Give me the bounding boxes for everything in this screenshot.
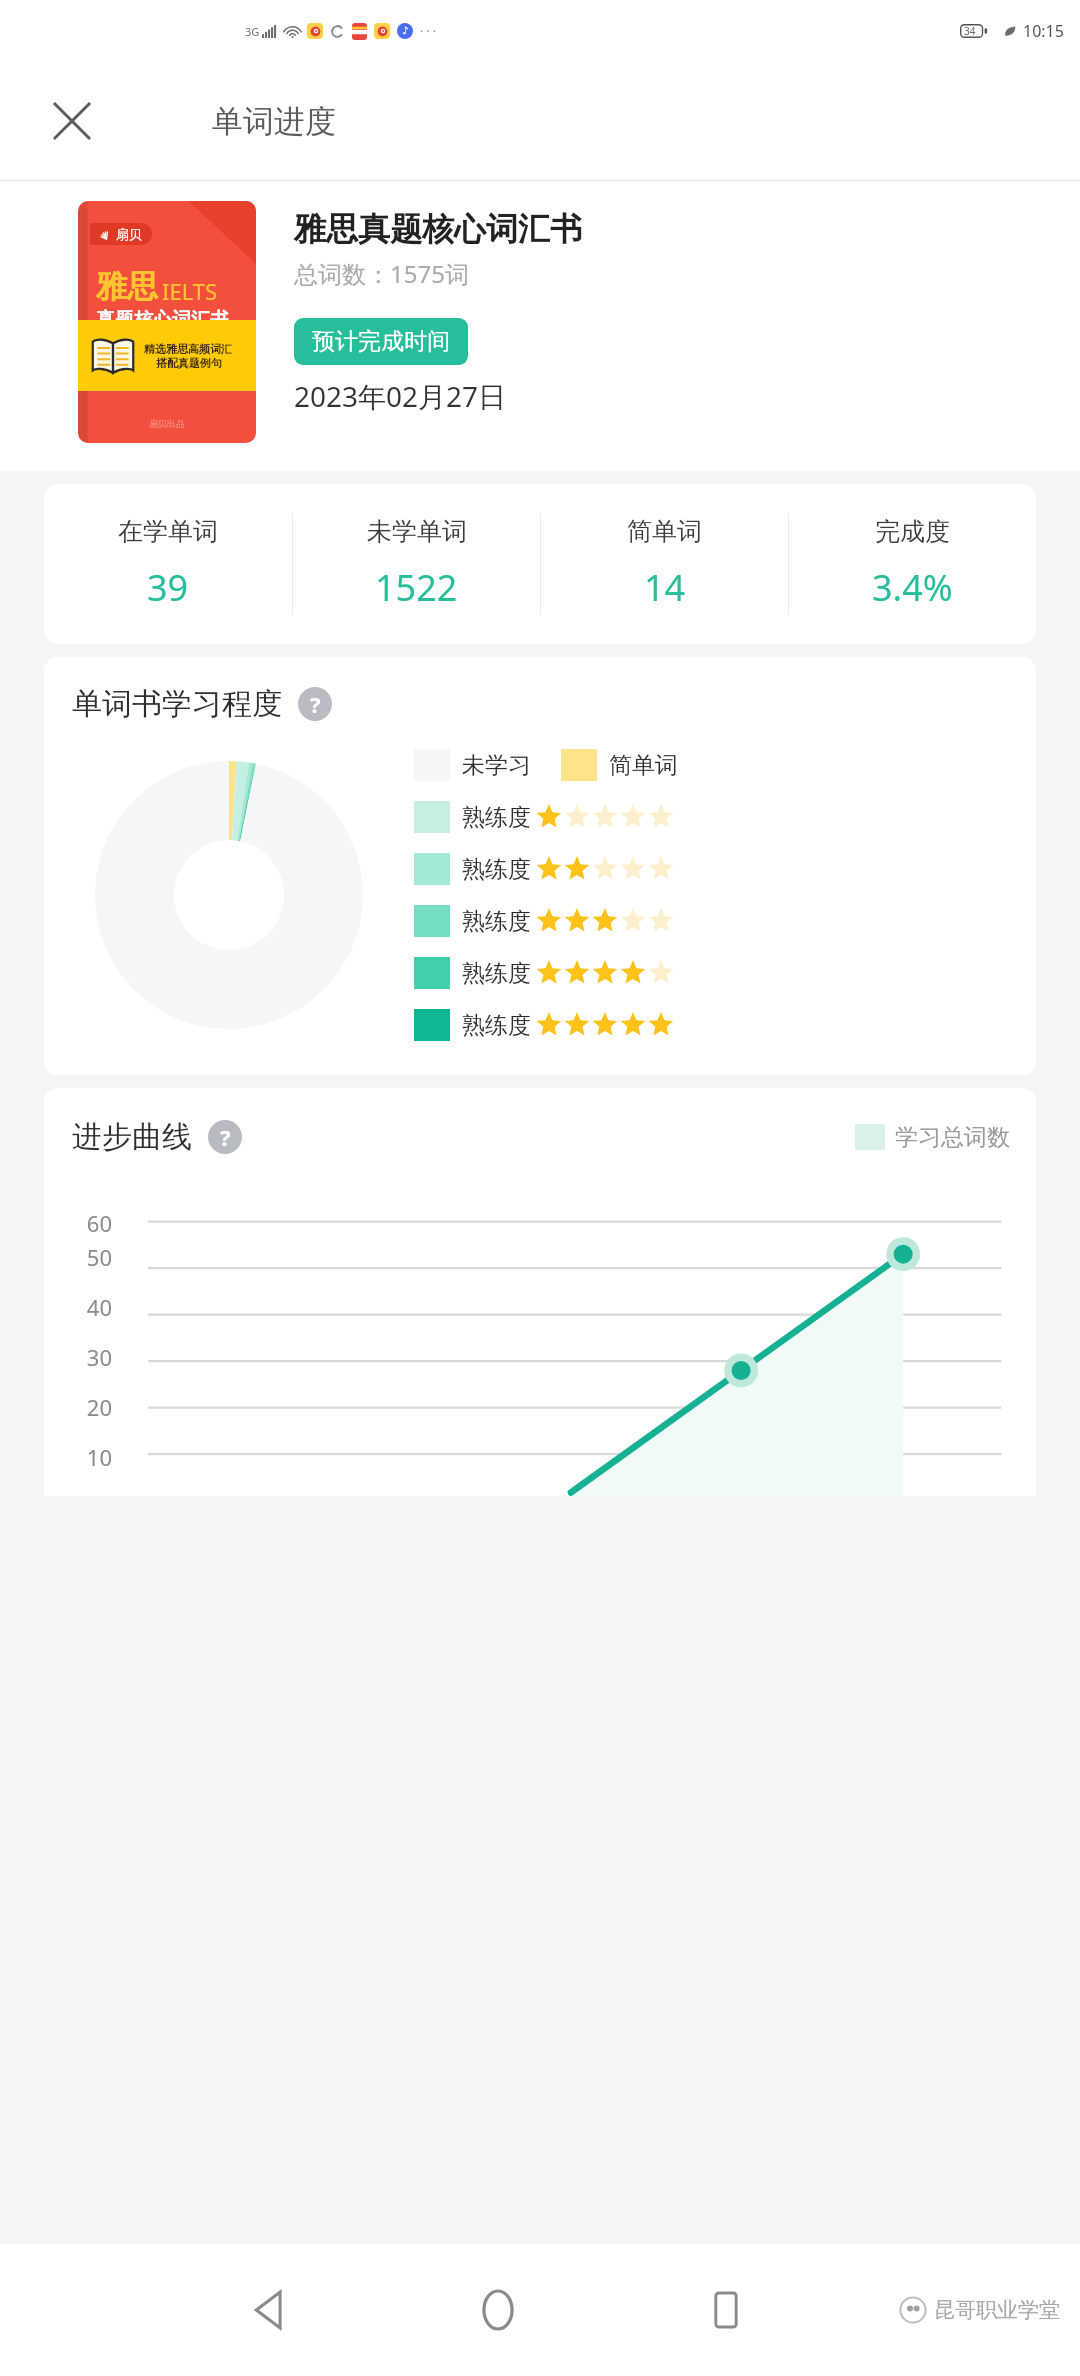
staticText: ? xyxy=(310,689,321,719)
staticText: 3G xyxy=(245,24,260,39)
staticText: 50 xyxy=(86,1242,112,1272)
staticText: · · · xyxy=(420,23,436,39)
staticText: 未学习 xyxy=(462,751,531,780)
staticText: 34 xyxy=(964,24,976,38)
button[interactable]: 熟练度 xyxy=(414,957,675,989)
staticText: 扇贝 xyxy=(116,226,142,242)
staticText: 熟练度 xyxy=(462,855,531,884)
button[interactable]: 预计完成时间 xyxy=(294,318,468,365)
staticText: 10:15 xyxy=(1023,20,1064,42)
staticText: 未学单词 xyxy=(367,516,467,547)
staticText: 2023年02月27日 xyxy=(294,377,507,415)
button[interactable]: Home xyxy=(458,2270,538,2350)
button[interactable]: Help xyxy=(298,687,332,721)
staticText: 预计完成时间 xyxy=(312,327,450,356)
staticText: 单词书学习程度 xyxy=(72,685,282,723)
staticText: 搭配真题例句 xyxy=(156,356,222,370)
staticText: 昆哥职业学堂 xyxy=(934,2297,1060,2323)
staticText: 30 xyxy=(86,1342,112,1372)
button[interactable]: 熟练度 xyxy=(414,1009,675,1041)
staticText: 简单词 xyxy=(609,751,678,780)
staticText: 扇贝出品 xyxy=(149,418,185,429)
staticText: 熟练度 xyxy=(462,907,531,936)
button[interactable]: 熟练度 xyxy=(414,801,675,833)
button[interactable]: 简单词 xyxy=(541,516,788,612)
button[interactable]: Help xyxy=(208,1120,242,1154)
staticText: 熟练度 xyxy=(462,803,531,832)
staticText: 完成度 xyxy=(875,516,950,547)
staticText: 熟练度 xyxy=(462,1011,531,1040)
staticText: 10 xyxy=(86,1442,112,1472)
staticText: 精选雅思高频词汇 xyxy=(144,342,232,356)
button[interactable]: 未学单词 xyxy=(293,516,540,612)
staticText: 40 xyxy=(86,1292,112,1322)
button[interactable]: 熟练度 xyxy=(414,853,675,885)
button[interactable]: 熟练度 xyxy=(414,905,675,937)
button[interactable]: Back xyxy=(230,2270,310,2350)
staticText: 雅思 xyxy=(96,267,158,306)
staticText: 3.4% xyxy=(872,563,953,612)
button[interactable]: 完成度 xyxy=(789,516,1036,612)
staticText: 真题核心词汇书 xyxy=(96,308,229,332)
staticText: 60 xyxy=(86,1208,112,1238)
staticText: 总词数：1575词 xyxy=(294,257,469,290)
button[interactable]: 扇贝 xyxy=(78,201,256,443)
staticText: IELTS xyxy=(162,276,218,306)
staticText: 在学单词 xyxy=(118,516,218,547)
staticText: 39 xyxy=(147,563,189,612)
staticText: 学习总词数 xyxy=(895,1123,1010,1152)
staticText: 单词进度 xyxy=(212,102,336,141)
staticText: 简单词 xyxy=(627,516,702,547)
button[interactable]: Recents xyxy=(686,2270,766,2350)
button[interactable]: Close xyxy=(44,93,100,149)
staticText: 14 xyxy=(644,563,686,612)
staticText: 20 xyxy=(86,1392,112,1422)
button[interactable]: 在学单词 xyxy=(44,516,292,612)
staticText: 进步曲线 xyxy=(72,1118,192,1156)
staticText: 雅思真题核心词汇书 xyxy=(294,209,582,249)
staticText: 熟练度 xyxy=(462,959,531,988)
staticText: ? xyxy=(220,1122,231,1152)
staticText: ♪ xyxy=(402,25,409,37)
staticText: 1522 xyxy=(375,563,458,612)
